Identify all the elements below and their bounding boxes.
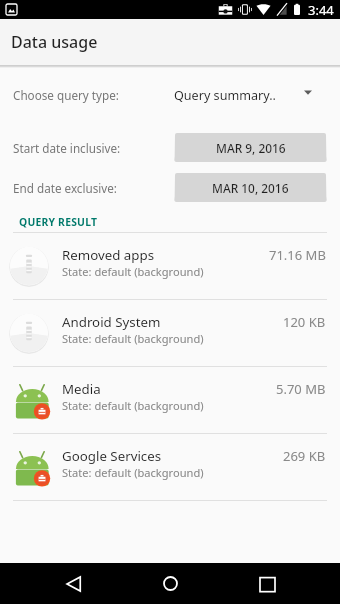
staticText: 71.16 MB bbox=[269, 246, 326, 264]
staticText: Removed apps bbox=[62, 246, 155, 264]
staticText: Android System bbox=[62, 313, 161, 331]
staticText: 5.70 MB bbox=[276, 380, 326, 398]
staticText: Choose query type: bbox=[13, 87, 119, 103]
staticText: MAR 10, 2016 bbox=[212, 180, 289, 196]
button[interactable]: MAR 10, 2016 bbox=[175, 173, 326, 202]
staticText: Google Services bbox=[62, 447, 162, 465]
staticText: Media bbox=[62, 380, 101, 398]
staticText: State: default (background) bbox=[62, 264, 204, 279]
staticText: 269 KB bbox=[283, 447, 326, 465]
staticText: Query summary.. bbox=[174, 87, 276, 104]
staticText: State: default (background) bbox=[62, 465, 204, 480]
button[interactable]: Android System bbox=[0, 300, 340, 367]
button[interactable]: Recent apps bbox=[243, 563, 291, 604]
button[interactable]: MAR 9, 2016 bbox=[175, 133, 326, 162]
button[interactable]: Media bbox=[0, 367, 340, 434]
staticText: MAR 9, 2016 bbox=[216, 140, 286, 156]
button[interactable]: Google Services bbox=[0, 434, 340, 501]
staticText: Data usage bbox=[11, 31, 98, 53]
staticText: 120 KB bbox=[283, 313, 326, 331]
button[interactable]: Home bbox=[146, 563, 194, 604]
staticText: State: default (background) bbox=[62, 331, 204, 346]
staticText: Start date inclusive: bbox=[13, 140, 121, 156]
staticText: QUERY RESULT bbox=[19, 215, 98, 229]
staticText: End date exclusive: bbox=[13, 180, 117, 196]
button[interactable]: Removed apps bbox=[0, 233, 340, 300]
staticText: State: default (background) bbox=[62, 398, 204, 413]
staticText: 3:44 bbox=[308, 1, 334, 19]
button[interactable]: Query summary.. bbox=[174, 87, 316, 104]
button[interactable]: Back bbox=[49, 563, 97, 604]
